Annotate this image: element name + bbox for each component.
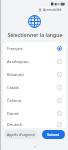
- button[interactable]: Deutsch: [3, 120, 66, 128]
- button[interactable]: Català: [3, 81, 66, 94]
- button[interactable]: Dansk: [3, 107, 66, 120]
- staticText: Appels d'urgence: [7, 132, 35, 137]
- button[interactable]: Bosanski: [3, 68, 66, 81]
- staticText: Accessibilité: [43, 8, 62, 12]
- staticText: Čeština: [7, 98, 57, 103]
- staticText: Azərbaycan: [7, 59, 57, 64]
- button[interactable]: Čeština: [3, 94, 66, 107]
- staticText: Bosanski: [7, 72, 57, 77]
- other: Accessibility: [38, 8, 42, 12]
- button[interactable]: Suivant: [42, 130, 65, 139]
- staticText: Català: [7, 85, 57, 90]
- staticText: Deutsch: [7, 122, 57, 127]
- staticText: Français: [7, 46, 57, 51]
- staticText: Suivant: [47, 132, 60, 137]
- staticText: Dansk: [7, 111, 57, 116]
- staticText: Sélectionner la langue: [7, 31, 63, 38]
- button[interactable]: Accessibility: [36, 7, 64, 13]
- button[interactable]: Appels d'urgence: [4, 130, 38, 139]
- button[interactable]: Azərbaycan: [3, 55, 66, 68]
- button[interactable]: Français: [3, 42, 66, 55]
